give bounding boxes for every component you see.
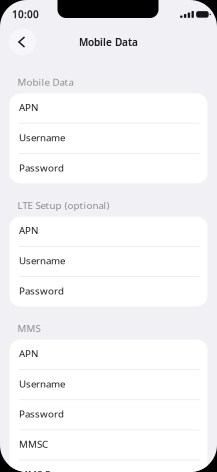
- button[interactable]: APN: [9, 93, 207, 123]
- staticText: Username: [19, 254, 65, 267]
- staticText: APN: [19, 224, 38, 237]
- button[interactable]: Password: [9, 277, 207, 306]
- staticText: Password: [19, 407, 64, 420]
- button[interactable]: Username: [9, 124, 207, 153]
- staticText: MMS: [17, 322, 40, 335]
- button[interactable]: Username: [9, 247, 207, 276]
- button[interactable]: APN: [9, 340, 207, 369]
- button[interactable]: MMS Proxy: [9, 460, 207, 472]
- staticText: Password: [19, 161, 64, 174]
- staticText: Username: [19, 131, 65, 144]
- button[interactable]: Username: [9, 370, 207, 399]
- staticText: LTE Setup (optional): [17, 198, 109, 212]
- button[interactable]: Password: [9, 154, 207, 183]
- button[interactable]: APN: [9, 217, 207, 246]
- staticText: MMSC: [19, 437, 48, 451]
- button[interactable]: Back: [9, 28, 36, 55]
- staticText: MMS Proxy: [19, 468, 71, 472]
- staticText: 10:00: [12, 7, 39, 21]
- staticText: Mobile Data: [79, 35, 138, 49]
- staticText: APN: [19, 101, 38, 114]
- staticText: Mobile Data: [17, 75, 73, 89]
- staticText: Password: [19, 284, 64, 297]
- button[interactable]: Password: [9, 400, 207, 429]
- button[interactable]: MMSC: [9, 430, 207, 460]
- staticText: Username: [19, 377, 65, 390]
- staticText: APN: [19, 347, 38, 360]
